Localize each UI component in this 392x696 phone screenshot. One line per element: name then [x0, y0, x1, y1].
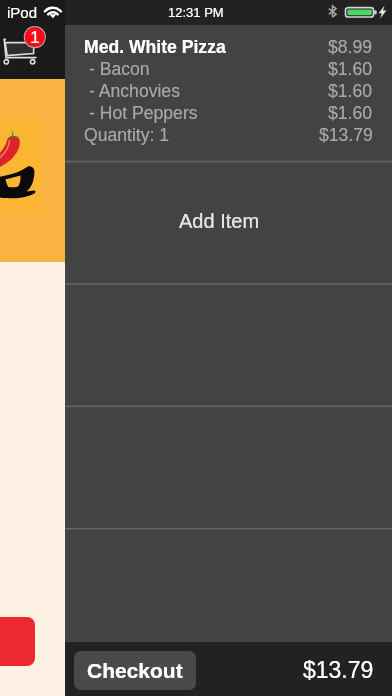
staticText: - Anchovies [89, 81, 180, 101]
staticText: $8.99 [328, 37, 373, 57]
staticText: $1.60 [328, 81, 373, 101]
staticText: Add Item [179, 210, 260, 232]
button[interactable]: Add Item [65, 161, 392, 283]
staticText: Checkout [87, 659, 183, 682]
staticText: Med. White Pizza [84, 37, 226, 57]
button[interactable]: Order now [0, 617, 35, 666]
staticText: - Hot Peppers [89, 103, 198, 123]
staticText: $13.79 [303, 657, 374, 683]
staticText: 1 [30, 28, 40, 47]
button[interactable]: Checkout [74, 651, 196, 690]
staticText: 12:31 PM [168, 5, 224, 20]
staticText: $13.79 [319, 125, 373, 145]
staticText: $1.60 [328, 59, 373, 79]
staticText: $1.60 [328, 103, 373, 123]
button[interactable]: Med. White Pizza [65, 25, 392, 161]
staticText: iPod [7, 4, 38, 21]
staticText: - Bacon [89, 59, 150, 79]
staticText: Quantity: 1 [84, 125, 170, 145]
